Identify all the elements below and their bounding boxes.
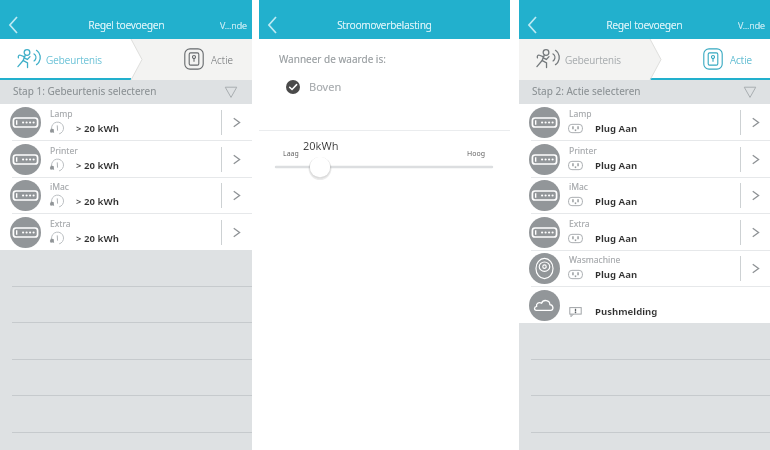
staticText: Laag — [283, 149, 299, 159]
button[interactable]: V…nde — [220, 11, 248, 39]
button[interactable]: Actie — [661, 39, 770, 80]
staticText: Plug Aan — [595, 159, 638, 172]
button[interactable]: Printer — [0, 141, 252, 178]
button[interactable]: Extra — [519, 214, 770, 251]
button[interactable]: Filter — [225, 86, 237, 98]
button[interactable]: Filter — [744, 86, 756, 98]
button[interactable]: Back — [0, 11, 25, 39]
staticText: Extra — [50, 218, 71, 230]
staticText: Wanneer de waarde is: — [279, 52, 386, 66]
staticText: Stroomoverbelasting — [337, 18, 432, 32]
staticText: iMac — [50, 181, 69, 193]
staticText: V…nde — [220, 19, 248, 31]
button[interactable]: iMac — [0, 177, 252, 214]
staticText: Plug Aan — [595, 195, 638, 208]
staticText: 20kWh — [303, 138, 339, 153]
button[interactable]: Lamp — [519, 104, 770, 141]
button[interactable]: Boven — [286, 78, 342, 95]
staticText: Wasmachine — [569, 254, 621, 266]
staticText: Plug Aan — [595, 232, 638, 245]
staticText: > 20 kWh — [76, 159, 119, 172]
staticText: Stap 2: Actie selecteren — [532, 84, 641, 98]
staticText: V…nde — [738, 19, 766, 31]
button[interactable]: iMac — [519, 177, 770, 214]
staticText: Regel toevoegen — [88, 18, 165, 32]
staticText: Lamp — [50, 108, 73, 120]
button[interactable]: Back — [259, 11, 284, 39]
button[interactable]: Gebeurtenis — [519, 39, 650, 80]
staticText: Plug Aan — [595, 122, 638, 135]
button[interactable]: Lamp — [0, 104, 252, 141]
staticText: > 20 kWh — [76, 122, 119, 135]
staticText: Pushmelding — [595, 305, 658, 318]
staticText: Printer — [569, 145, 597, 157]
staticText: Extra — [569, 218, 590, 230]
button[interactable]: Extra — [0, 214, 252, 251]
staticText: > 20 kWh — [76, 195, 119, 208]
button[interactable]: Gebeurtenis — [0, 39, 131, 80]
button[interactable]: Actie — [142, 39, 252, 80]
staticText: Plug Aan — [595, 268, 638, 281]
button[interactable]: Wasmachine — [519, 250, 770, 287]
staticText: > 20 kWh — [76, 232, 119, 245]
staticText: Actie — [730, 53, 753, 67]
staticText: Lamp — [569, 108, 592, 120]
button[interactable]: Pushmelding — [519, 287, 770, 324]
staticText: Printer — [50, 145, 78, 157]
staticText: Gebeurtenis — [565, 53, 622, 67]
staticText: Gebeurtenis — [46, 53, 103, 67]
staticText: Stap 1: Gebeurtenis selecteren — [13, 84, 157, 98]
staticText: Hoog — [467, 149, 485, 159]
staticText: iMac — [569, 181, 588, 193]
button[interactable]: V…nde — [738, 11, 766, 39]
staticText: Regel toevoegen — [606, 18, 683, 32]
button[interactable]: Back — [519, 11, 544, 39]
staticText: Boven — [309, 79, 342, 94]
button[interactable]: Printer — [519, 141, 770, 178]
staticText: Actie — [211, 53, 234, 67]
